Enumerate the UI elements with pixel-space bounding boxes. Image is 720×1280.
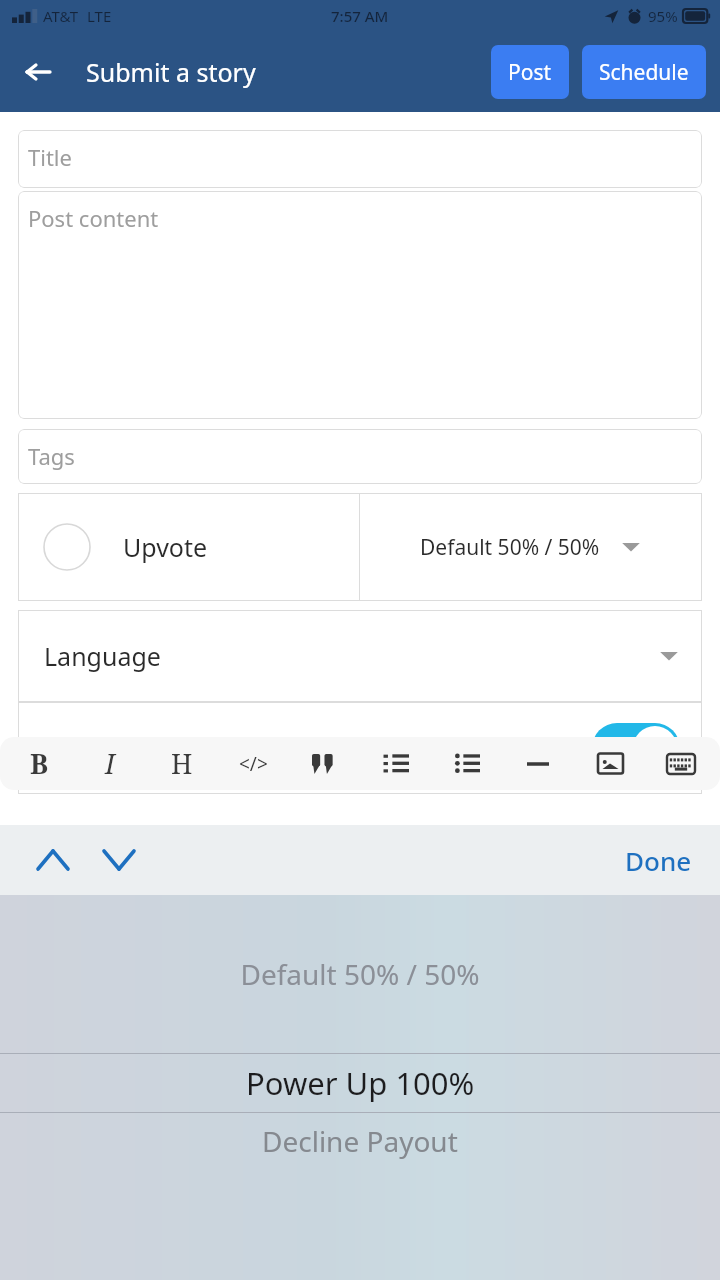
button[interactable]: Permission toggle xyxy=(592,723,680,773)
button[interactable]: Horizontal rule xyxy=(515,737,561,790)
button[interactable]: Quote xyxy=(301,737,347,790)
staticText: B xyxy=(30,745,49,782)
button[interactable]: Italic xyxy=(87,737,133,790)
button[interactable]: Bold xyxy=(16,737,62,790)
button[interactable]: Insert image xyxy=(587,737,633,790)
staticText: Default 50% / 50% xyxy=(420,533,600,562)
staticText: Tags xyxy=(28,441,75,471)
button[interactable]: Permission xyxy=(18,702,702,794)
button[interactable]: Done xyxy=(611,830,706,890)
button[interactable]: Power Up 100% xyxy=(0,1054,720,1112)
staticText: Submit a story xyxy=(86,55,256,89)
button[interactable]: Language xyxy=(18,610,702,702)
button[interactable]: Next field xyxy=(90,831,148,889)
button[interactable]: Upvote xyxy=(18,493,359,601)
button[interactable]: Schedule xyxy=(582,45,706,99)
button[interactable]: Previous field xyxy=(24,831,82,889)
staticText: I xyxy=(105,745,115,782)
button[interactable]: Back xyxy=(10,44,66,100)
staticText: Post xyxy=(508,58,552,87)
button[interactable]: Bullet list xyxy=(444,737,490,790)
staticText: Done xyxy=(625,843,692,878)
staticText: Title xyxy=(28,142,72,172)
button[interactable]: Default 50% / 50% xyxy=(360,493,702,601)
staticText: Permission xyxy=(44,731,175,765)
staticText: </> xyxy=(239,751,268,777)
staticText: Upvote xyxy=(123,530,208,564)
staticText: Power Up 100% xyxy=(246,1062,475,1104)
button[interactable]: Hide keyboard xyxy=(658,737,704,790)
staticText: Post content xyxy=(28,203,159,233)
staticText: H xyxy=(171,745,193,782)
staticText: AT&T xyxy=(43,6,78,26)
button[interactable]: Title xyxy=(18,130,702,188)
button[interactable]: Tags xyxy=(18,429,702,484)
staticText: Decline Payout xyxy=(262,1122,458,1160)
button[interactable]: Numbered list xyxy=(373,737,419,790)
button[interactable]: Heading xyxy=(159,737,205,790)
staticText: 7:57 AM xyxy=(331,6,389,26)
button[interactable]: Post content xyxy=(18,191,702,419)
staticText: Language xyxy=(44,639,161,673)
staticText: LTE xyxy=(87,6,112,26)
button[interactable]: Code xyxy=(230,737,276,790)
staticText: Default 50% / 50% xyxy=(240,955,480,993)
staticText: 95% xyxy=(648,6,678,26)
staticText: Schedule xyxy=(599,58,689,87)
button[interactable]: Post xyxy=(491,45,569,99)
